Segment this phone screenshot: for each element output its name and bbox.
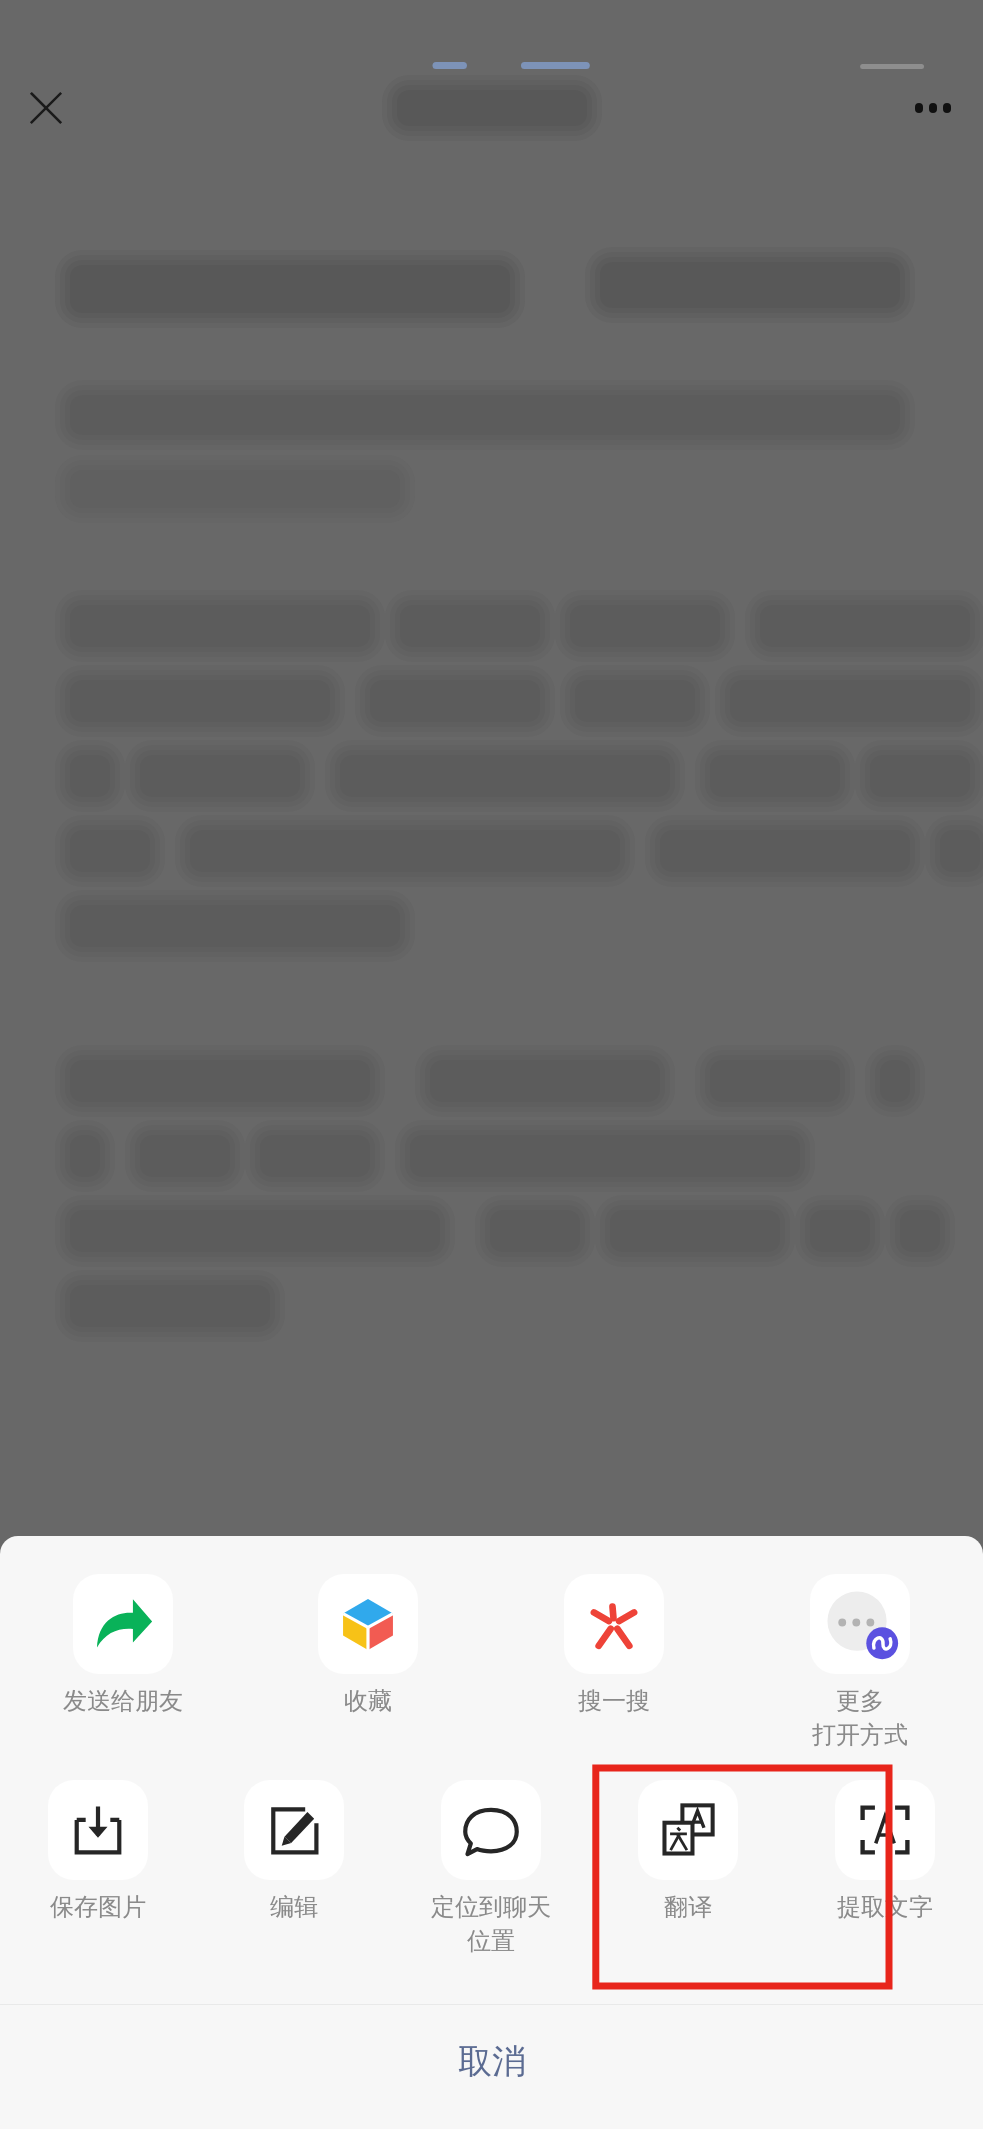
- staticText: 位置: [467, 1926, 515, 1956]
- staticText: 打开方式: [812, 1720, 908, 1750]
- button[interactable]: 翻译: [589, 1778, 786, 1924]
- staticText: 保存图片: [50, 1892, 146, 1922]
- staticText: 搜一搜: [578, 1686, 650, 1716]
- button[interactable]: 更多: [737, 1572, 983, 1752]
- staticText: 翻译: [664, 1892, 712, 1922]
- button[interactable]: 保存图片: [0, 1778, 196, 1924]
- button[interactable]: 发送给朋友: [0, 1572, 245, 1718]
- staticText: 编辑: [270, 1892, 318, 1922]
- button[interactable]: 收藏: [245, 1572, 491, 1718]
- staticText: 取消: [458, 2040, 526, 2083]
- button[interactable]: 编辑: [196, 1778, 392, 1924]
- button[interactable]: More options: [897, 72, 969, 144]
- button[interactable]: 定位到聊天: [392, 1778, 589, 1958]
- staticText: 收藏: [344, 1686, 392, 1716]
- button[interactable]: 搜一搜: [491, 1572, 737, 1718]
- button[interactable]: 取消: [0, 2005, 983, 2117]
- staticText: 发送给朋友: [63, 1686, 183, 1716]
- staticText: 更多: [836, 1686, 884, 1716]
- button[interactable]: Close: [10, 72, 82, 144]
- staticText: 定位到聊天: [431, 1892, 551, 1922]
- button[interactable]: 提取文字: [786, 1778, 983, 1924]
- staticText: 提取文字: [837, 1892, 933, 1922]
